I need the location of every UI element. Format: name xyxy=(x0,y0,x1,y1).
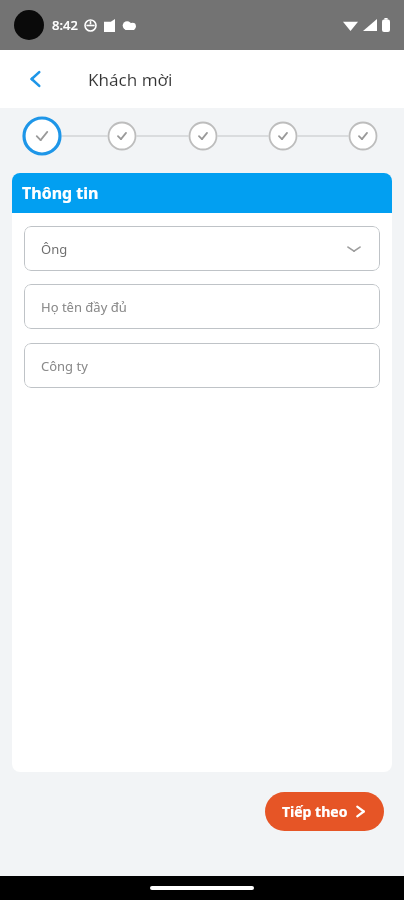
staticText: Họ tên đầy đủ xyxy=(41,298,127,316)
button[interactable]: Công ty xyxy=(24,343,380,388)
button[interactable]: Back xyxy=(18,61,54,97)
button[interactable]: Tiếp theo xyxy=(265,792,384,831)
staticText: 8:42 xyxy=(52,16,78,34)
staticText: Thông tin xyxy=(22,182,99,204)
staticText: Ông xyxy=(41,240,68,258)
staticText: Công ty xyxy=(41,357,88,375)
button[interactable]: Họ tên đầy đủ xyxy=(24,284,380,329)
staticText: Khách mời xyxy=(88,68,173,91)
staticText: Tiếp theo xyxy=(282,802,348,821)
button[interactable]: Ông xyxy=(24,226,380,271)
